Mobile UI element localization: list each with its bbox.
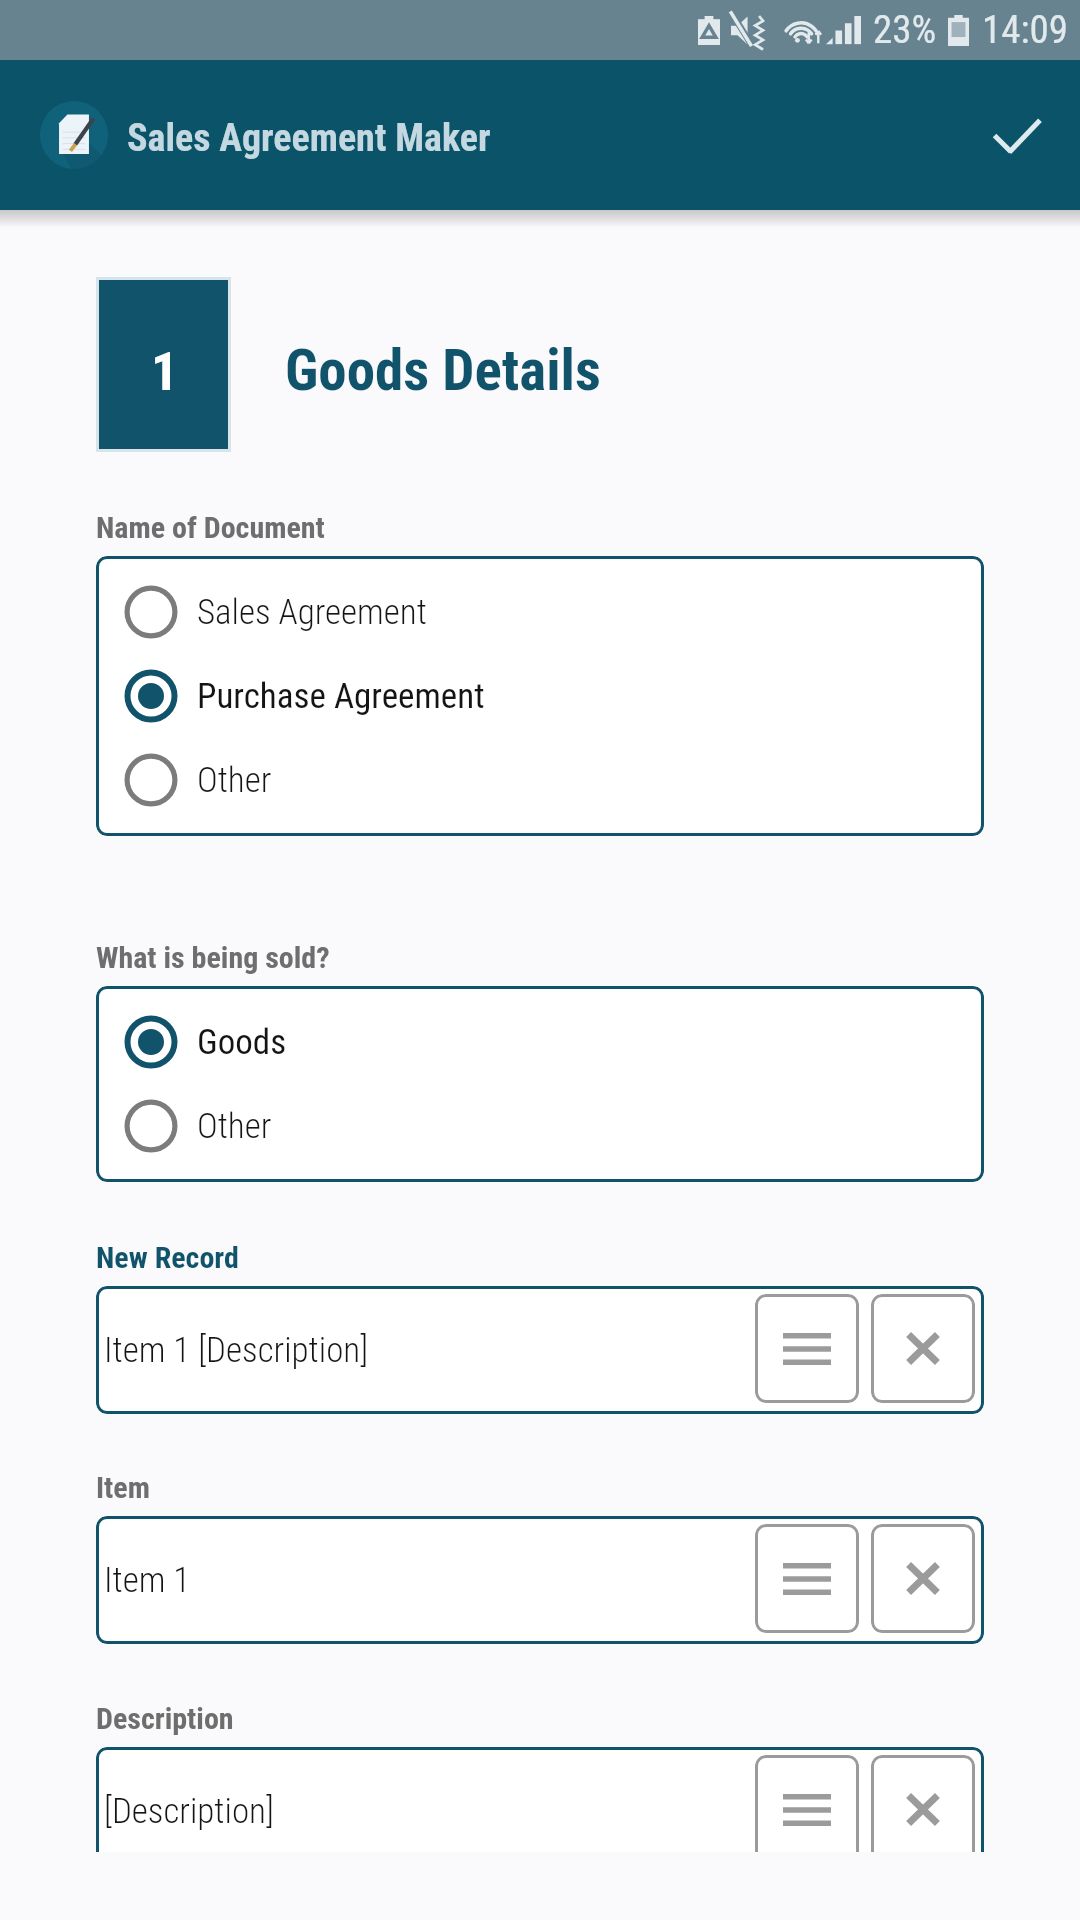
button[interactable]: Clear <box>871 1524 975 1633</box>
staticText: Sales Agreement Maker <box>127 116 491 161</box>
staticText: Goods Details <box>285 337 601 404</box>
button[interactable]: Purchase Agreement <box>96 654 984 738</box>
button[interactable]: Reorder <box>755 1755 859 1852</box>
staticText: Sales Agreement <box>197 592 427 633</box>
staticText: Other <box>197 1106 272 1147</box>
staticText: 14:09 <box>982 7 1069 53</box>
button[interactable]: Done <box>971 90 1061 180</box>
staticText: Goods <box>197 1022 287 1063</box>
staticText: New Record <box>96 1240 239 1275</box>
button[interactable]: Clear <box>871 1294 975 1403</box>
button[interactable]: Sales Agreement <box>96 570 984 654</box>
staticText: Item 1 [Description] <box>104 1330 369 1371</box>
staticText: Purchase Agreement <box>197 676 485 717</box>
staticText: Item <box>96 1470 150 1505</box>
button[interactable]: Reorder <box>755 1294 859 1403</box>
button[interactable]: Clear <box>871 1755 975 1852</box>
staticText: 23% <box>873 7 937 53</box>
button[interactable]: Goods <box>96 1000 984 1084</box>
staticText: 1 <box>151 340 179 403</box>
staticText: Name of Document <box>96 510 325 545</box>
button[interactable]: Other <box>96 1084 984 1168</box>
staticText: Item 1 <box>104 1560 191 1601</box>
staticText: Other <box>197 760 272 801</box>
button[interactable]: Other <box>96 738 984 822</box>
staticText: [Description] <box>104 1791 274 1832</box>
button[interactable]: Reorder <box>755 1524 859 1633</box>
staticText: What is being sold? <box>96 940 330 975</box>
staticText: Description <box>96 1701 234 1736</box>
